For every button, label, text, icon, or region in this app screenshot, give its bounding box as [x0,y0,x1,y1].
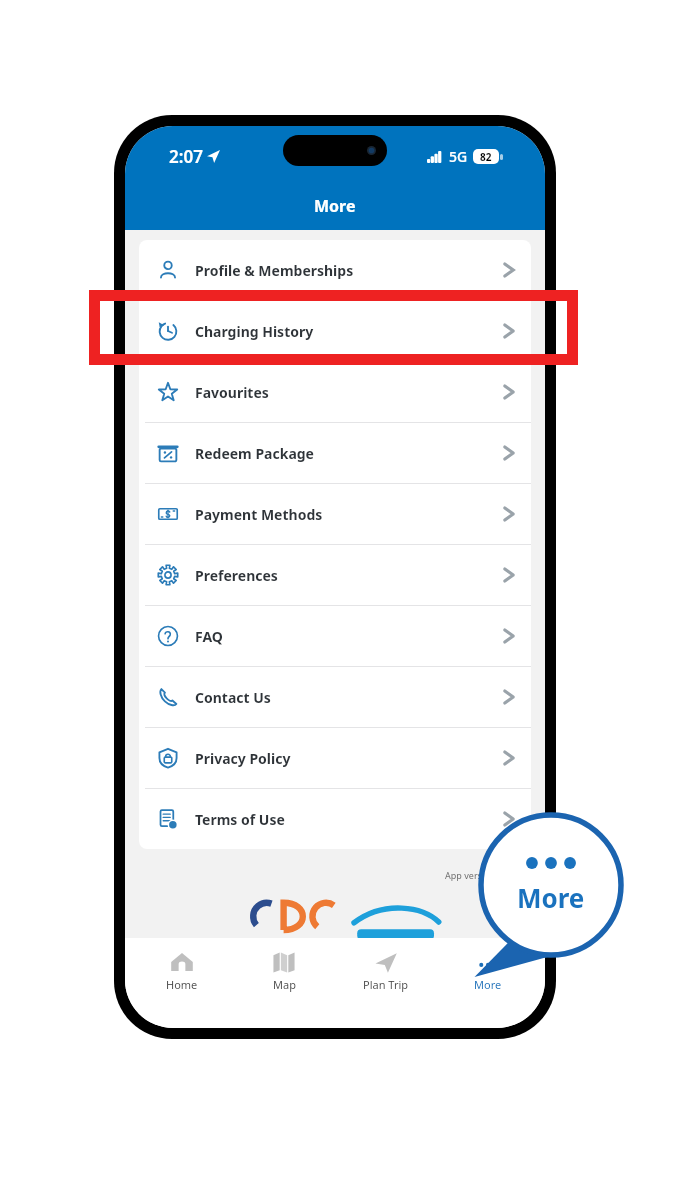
button[interactable]: Charging History [139,301,531,361]
staticText: More [474,977,502,992]
staticText: More [517,880,585,915]
button[interactable]: FAQ [139,606,531,666]
staticText: 2:07 [169,145,203,168]
button[interactable]: Profile & Memberships [139,240,531,300]
staticText: More [314,195,356,217]
button[interactable]: Preferences [139,545,531,605]
staticText: Terms of Use [195,810,285,829]
staticText: Payment Methods [195,505,323,524]
staticText: FAQ [195,627,223,646]
button[interactable]: More [443,946,533,996]
staticText: Plan Trip [363,977,409,992]
staticText: Redeem Package [195,444,314,463]
staticText: Preferences [195,566,278,585]
staticText: 82 [480,150,492,164]
button[interactable]: More tab callout [478,812,624,958]
staticText: Privacy Policy [195,749,291,768]
button[interactable]: Terms of Use [139,789,531,849]
staticText: App version 22.0.0 [125,869,523,881]
button[interactable]: Map [239,946,329,996]
button[interactable]: Home [137,946,227,996]
button[interactable]: Payment Methods [139,484,531,544]
staticText: Contact Us [195,688,271,707]
staticText: Favourites [195,383,269,402]
button[interactable]: Contact Us [139,667,531,727]
button[interactable]: Redeem Package [139,423,531,483]
staticText: 5G [449,147,468,166]
button[interactable]: Privacy Policy [139,728,531,788]
staticText: Charging History [195,322,314,341]
staticText: Home [166,977,198,992]
button[interactable]: Favourites [139,362,531,422]
staticText: Profile & Memberships [195,261,354,280]
staticText: Map [273,977,296,992]
button[interactable]: Plan Trip [341,946,431,996]
